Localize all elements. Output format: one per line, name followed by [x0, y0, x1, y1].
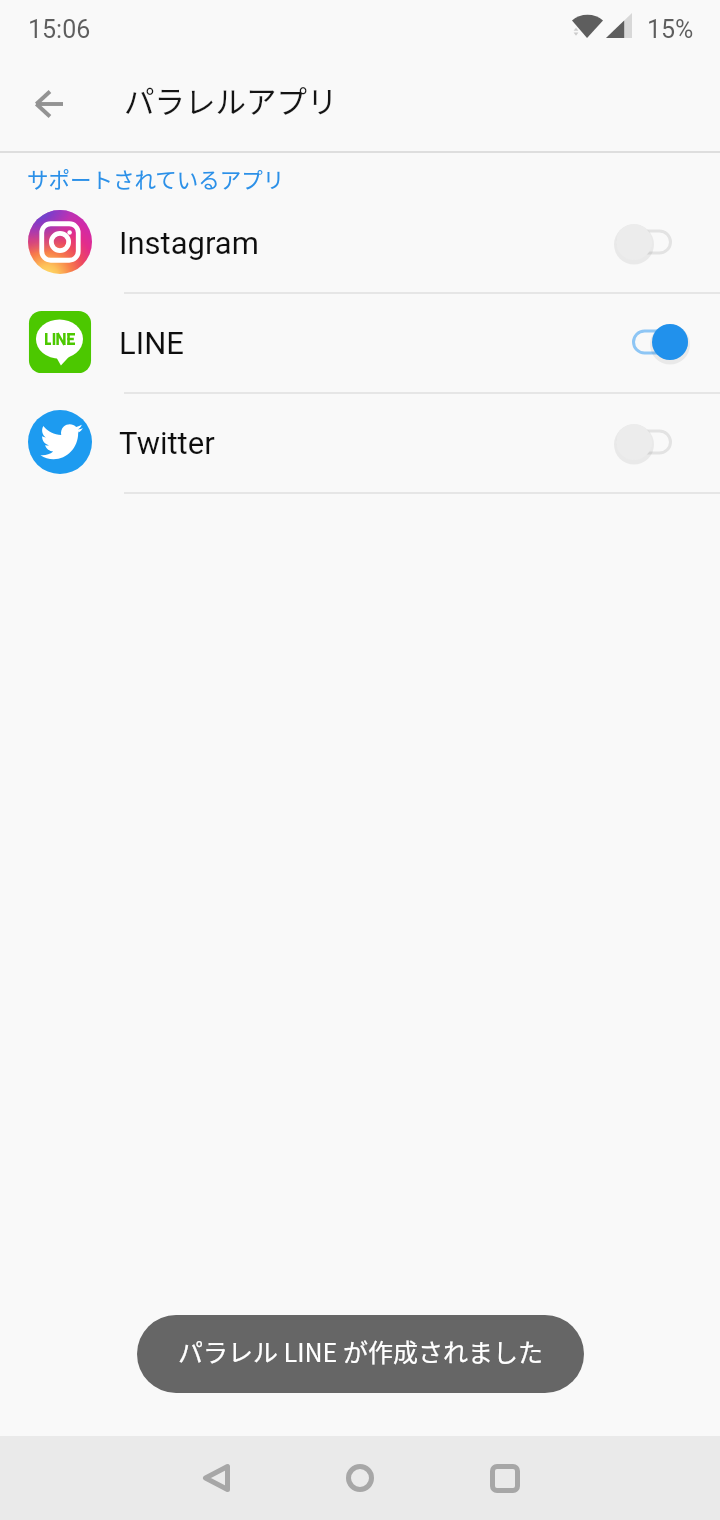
button[interactable] — [616, 420, 688, 464]
staticText: Instagram — [119, 225, 259, 261]
staticText: LINE — [119, 325, 184, 361]
button[interactable]: Recent apps — [432, 1436, 576, 1520]
button[interactable]: パラレル LINE が作成されました — [137, 1315, 584, 1393]
staticText: サポートされているアプリ — [27, 163, 285, 194]
button[interactable] — [616, 320, 688, 364]
button[interactable] — [616, 220, 688, 264]
button[interactable]: LINE — [0, 292, 720, 392]
button[interactable]: Instagram — [0, 192, 720, 292]
staticText: 15% — [647, 15, 694, 44]
button[interactable]: Back — [0, 58, 94, 151]
button[interactable]: Home — [288, 1436, 432, 1520]
staticText: パラレルアプリ — [124, 78, 338, 122]
staticText: パラレル LINE が作成されました — [178, 1333, 543, 1369]
staticText: Twitter — [119, 425, 215, 461]
button[interactable]: Twitter — [0, 392, 720, 492]
staticText: 15:06 — [28, 15, 91, 44]
button[interactable]: Back — [144, 1436, 288, 1520]
